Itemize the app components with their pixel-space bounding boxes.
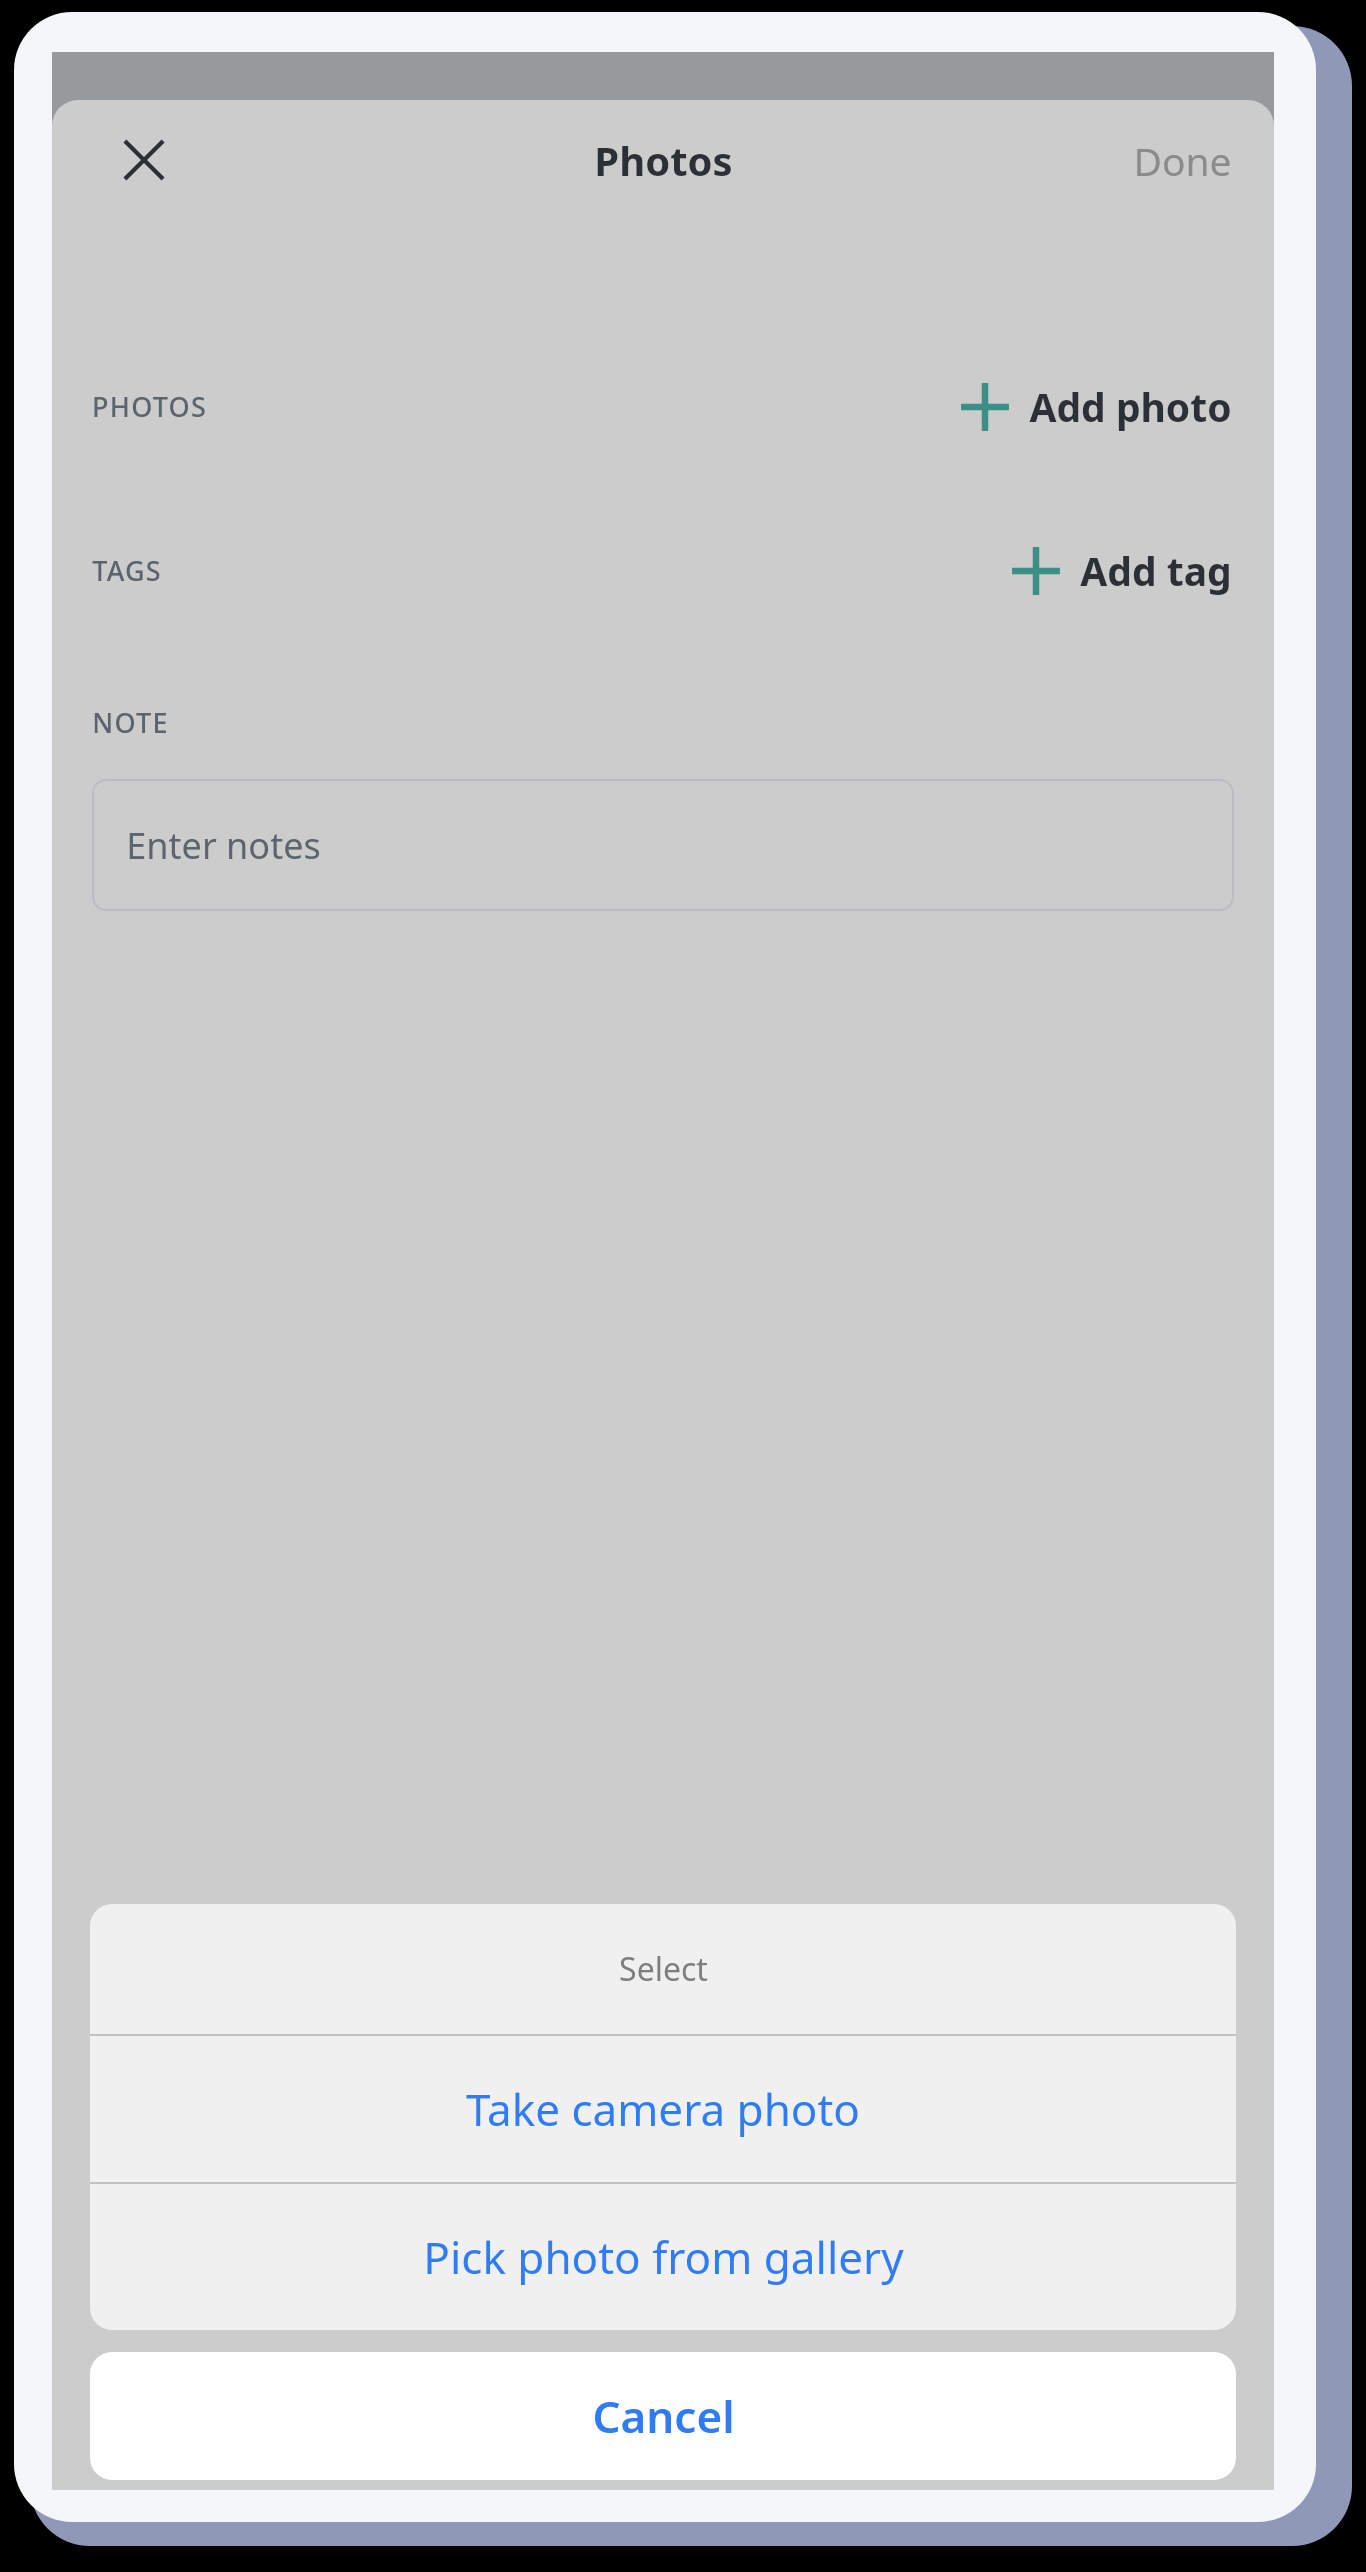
button[interactable]: Close [108,124,180,196]
staticText: Cancel [592,2386,735,2446]
staticText: Pick photo from gallery [423,2227,904,2287]
staticText: Select [619,1947,708,1991]
button[interactable]: Add photo [951,374,1240,439]
button[interactable]: Pick photo from gallery [90,2184,1236,2330]
staticText: PHOTOS [92,388,207,425]
staticText: NOTE [92,704,169,741]
staticText: Enter notes [126,821,321,870]
staticText: Take camera photo [466,2079,860,2139]
staticText: Add tag [1080,544,1232,597]
button[interactable]: Done [1111,118,1254,203]
staticText: Done [1133,134,1232,187]
staticText: Photos [594,133,733,187]
staticText: TAGS [92,552,162,589]
button[interactable]: Enter notes [92,779,1234,911]
button[interactable]: Cancel [90,2352,1236,2480]
staticText: Add photo [1029,380,1232,433]
button[interactable]: Take camera photo [90,2036,1236,2182]
button[interactable]: Add tag [1002,538,1240,603]
